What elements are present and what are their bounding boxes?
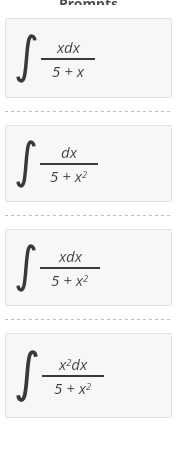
staticText: x2dx: [59, 354, 88, 374]
button[interactable]: xdx: [5, 229, 172, 306]
staticText: Prompts: [59, 0, 119, 5]
staticText: 5 + x2: [50, 166, 88, 186]
staticText: xdx: [57, 37, 80, 57]
staticText: 5 + x: [52, 61, 84, 81]
staticText: 5 + x2: [51, 270, 89, 290]
button[interactable]: x2dx: [5, 333, 172, 418]
staticText: 5 + x2: [54, 378, 92, 398]
staticText: xdx: [59, 246, 82, 266]
button[interactable]: dx: [5, 125, 172, 202]
staticText: dx: [61, 142, 77, 162]
button[interactable]: Prompts: [0, 0, 177, 11]
button[interactable]: xdx: [5, 18, 172, 98]
